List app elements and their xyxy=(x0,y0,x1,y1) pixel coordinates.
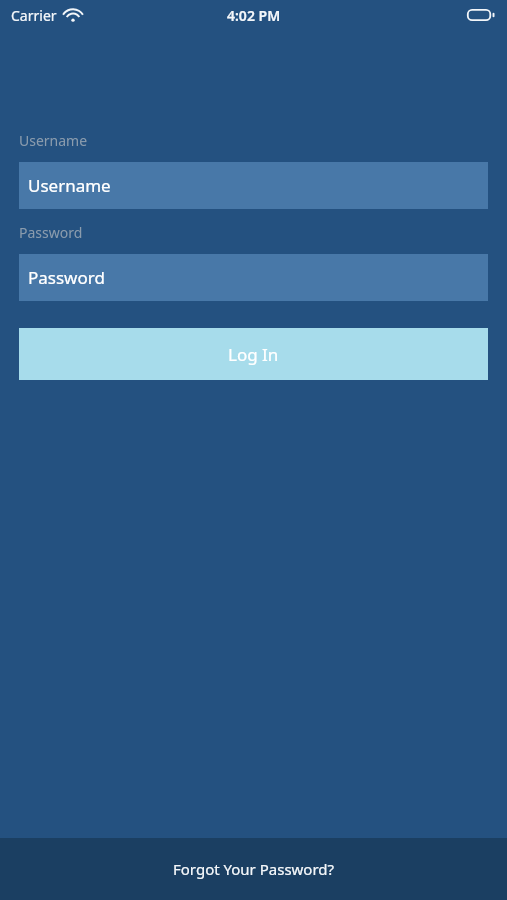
button[interactable]: Password xyxy=(19,254,488,301)
other: Wi-Fi signal xyxy=(64,9,82,22)
other: Battery level xyxy=(466,8,496,22)
staticText: Password xyxy=(28,266,105,289)
staticText: Username xyxy=(19,131,88,150)
staticText: Username xyxy=(28,174,111,197)
staticText: Log In xyxy=(228,343,279,366)
staticText: Forgot Your Password? xyxy=(173,859,335,879)
button[interactable]: Log In xyxy=(19,328,488,380)
staticText: Carrier xyxy=(11,6,57,25)
staticText: 4:02 PM xyxy=(227,6,281,25)
button[interactable]: Forgot Your Password? xyxy=(0,838,507,900)
staticText: Password xyxy=(19,223,83,242)
button[interactable]: Username xyxy=(19,162,488,209)
